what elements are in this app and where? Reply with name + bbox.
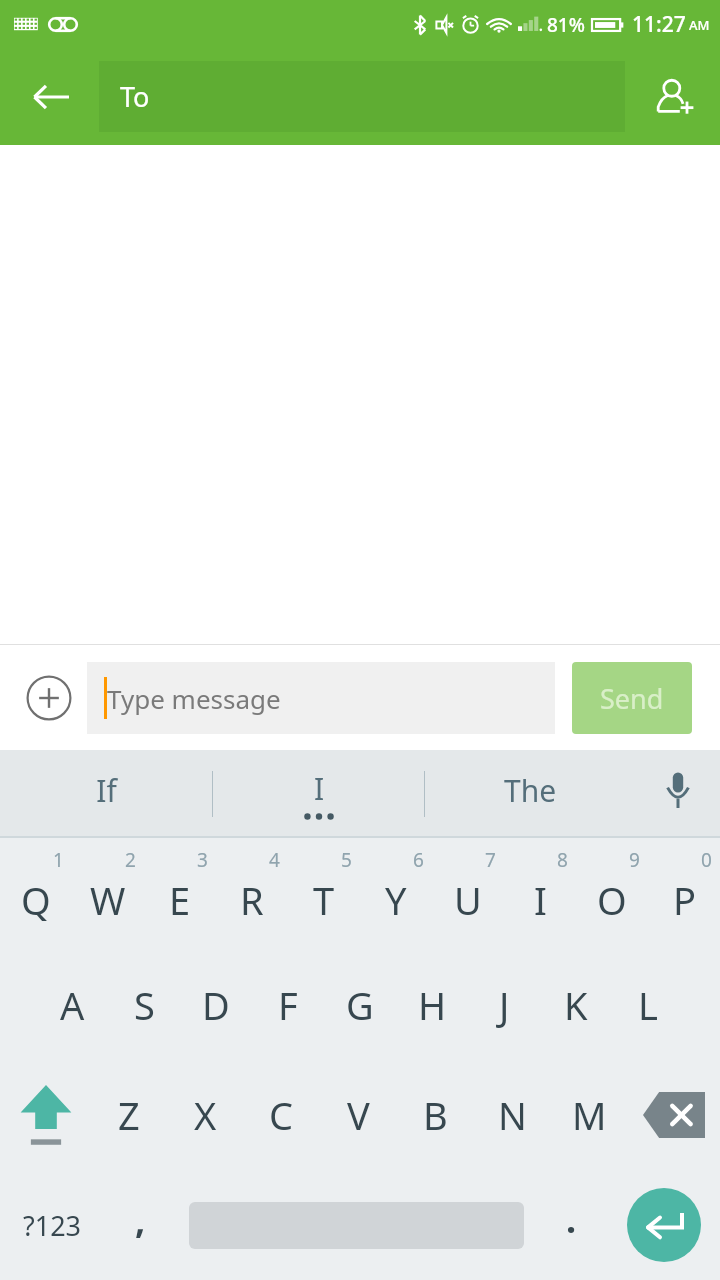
button[interactable]: 1 [0, 838, 72, 950]
button[interactable]: Voice input [636, 750, 720, 838]
button[interactable]: Type message [87, 662, 555, 734]
staticText: W [90, 874, 126, 926]
staticText: 6 [413, 847, 424, 873]
staticText: V [347, 1089, 370, 1141]
staticText: 4 [269, 847, 280, 873]
staticText: Y [385, 874, 407, 926]
staticText: C [269, 1089, 294, 1141]
button[interactable]: , [105, 1170, 176, 1280]
button[interactable]: Enter [607, 1170, 720, 1280]
staticText: B [423, 1089, 448, 1141]
staticText: L [638, 979, 658, 1031]
button[interactable]: A [36, 950, 108, 1060]
staticText: 1 [53, 847, 64, 873]
staticText: S [134, 979, 155, 1031]
button[interactable]: ?123 [0, 1170, 105, 1280]
button[interactable]: Space [176, 1170, 536, 1280]
staticText: Send [600, 680, 664, 717]
button[interactable]: I [213, 750, 424, 838]
button[interactable]: Add contact [644, 66, 706, 128]
staticText: 0 [701, 847, 712, 873]
staticText: G [346, 979, 374, 1031]
staticText: I [314, 768, 325, 809]
staticText: . [566, 1195, 577, 1244]
staticText: J [499, 979, 510, 1031]
button[interactable]: 2 [72, 838, 144, 950]
staticText: Z [118, 1089, 140, 1141]
staticText: O [597, 874, 627, 926]
button[interactable]: 9 [576, 838, 648, 950]
staticText: A [60, 979, 85, 1031]
staticText: N [498, 1089, 527, 1141]
button[interactable]: To [99, 61, 625, 132]
staticText: Type message [107, 681, 281, 716]
staticText: To [120, 78, 150, 115]
staticText: F [278, 979, 298, 1031]
button[interactable]: M [551, 1060, 628, 1170]
staticText: 11:27 [632, 10, 686, 39]
staticText: T [313, 874, 335, 926]
staticText: 81% [547, 12, 585, 38]
staticText: 7 [485, 847, 496, 873]
staticText: R [240, 874, 264, 926]
button[interactable]: X [167, 1060, 243, 1170]
button[interactable]: Back [20, 66, 82, 128]
staticText: M [572, 1089, 607, 1141]
button[interactable]: G [324, 950, 396, 1060]
button[interactable]: 6 [360, 838, 432, 950]
staticText: I [534, 874, 547, 926]
staticText: K [564, 979, 588, 1031]
button[interactable]: L [612, 950, 684, 1060]
button[interactable]: S [108, 950, 180, 1060]
staticText: 8 [557, 847, 568, 873]
button[interactable]: Shift [0, 1060, 91, 1170]
button[interactable]: 0 [648, 838, 720, 950]
button[interactable]: 5 [288, 838, 360, 950]
staticText: Q [21, 874, 51, 926]
button[interactable]: Send [572, 662, 692, 734]
button[interactable]: V [320, 1060, 397, 1170]
button[interactable]: B [397, 1060, 474, 1170]
button[interactable]: C [243, 1060, 320, 1170]
staticText: H [418, 979, 447, 1031]
button[interactable]: . [536, 1170, 607, 1280]
button[interactable]: J [468, 950, 540, 1060]
button[interactable]: If [0, 750, 212, 838]
staticText: The [504, 770, 557, 811]
staticText: , [135, 1195, 146, 1244]
button[interactable]: Attach [18, 667, 80, 729]
staticText: U [454, 874, 482, 926]
staticText: 9 [629, 847, 640, 873]
staticText: E [169, 874, 191, 926]
button[interactable]: Backspace [628, 1060, 720, 1170]
staticText: P [673, 874, 696, 926]
button[interactable]: 4 [216, 838, 288, 950]
button[interactable]: 8 [504, 838, 576, 950]
staticText: If [96, 770, 117, 811]
button[interactable]: The [425, 750, 636, 838]
staticText: 2 [125, 847, 136, 873]
staticText: 3 [197, 847, 208, 873]
staticText: AM [689, 16, 710, 34]
staticText: X [194, 1089, 217, 1141]
staticText: D [202, 979, 230, 1031]
button[interactable]: Z [91, 1060, 167, 1170]
button[interactable]: K [540, 950, 612, 1060]
staticText: ?123 [23, 1207, 82, 1244]
staticText: 5 [341, 847, 352, 873]
button[interactable]: H [396, 950, 468, 1060]
button[interactable]: F [252, 950, 324, 1060]
button[interactable]: N [474, 1060, 551, 1170]
button[interactable]: 7 [432, 838, 504, 950]
button[interactable]: D [180, 950, 252, 1060]
button[interactable]: 3 [144, 838, 216, 950]
